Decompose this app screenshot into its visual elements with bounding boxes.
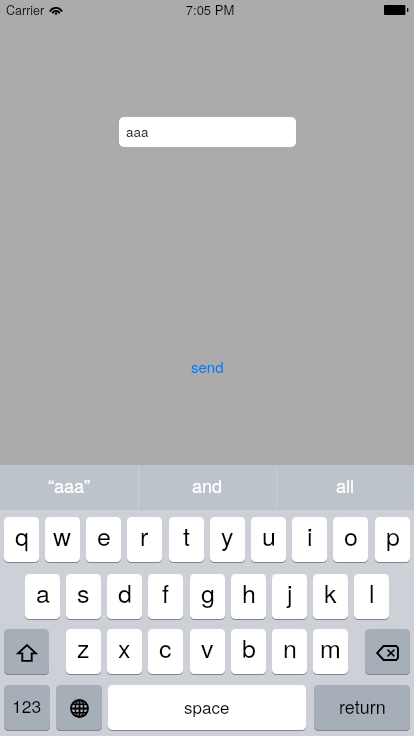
button[interactable]: and bbox=[138, 465, 276, 510]
staticText: z bbox=[77, 629, 90, 665]
staticText: d bbox=[118, 574, 132, 610]
button[interactable]: w bbox=[45, 517, 80, 562]
button[interactable]: q bbox=[4, 517, 39, 562]
staticText: s bbox=[77, 574, 90, 610]
staticText: m bbox=[320, 629, 341, 665]
staticText: g bbox=[201, 574, 215, 610]
button[interactable]: Shift bbox=[4, 629, 49, 674]
staticText: t bbox=[183, 517, 190, 553]
button[interactable]: return bbox=[314, 685, 410, 730]
staticText: 123 bbox=[12, 693, 42, 718]
button[interactable]: c bbox=[148, 629, 183, 674]
staticText: a bbox=[36, 574, 50, 610]
button[interactable]: f bbox=[148, 574, 183, 619]
button[interactable]: h bbox=[231, 574, 266, 619]
staticText: f bbox=[162, 574, 169, 610]
staticText: 7:05 PM bbox=[3, 0, 414, 19]
button[interactable]: r bbox=[127, 517, 162, 562]
staticText: r bbox=[140, 517, 149, 553]
staticText: all bbox=[336, 472, 354, 498]
staticText: h bbox=[242, 574, 256, 610]
button[interactable]: z bbox=[66, 629, 101, 674]
button[interactable]: “aaa” bbox=[0, 465, 138, 510]
staticText: c bbox=[159, 629, 172, 665]
button[interactable]: v bbox=[190, 629, 225, 674]
button[interactable]: y bbox=[210, 517, 245, 562]
staticText: u bbox=[262, 517, 276, 553]
button[interactable]: all bbox=[276, 465, 414, 510]
button[interactable]: k bbox=[313, 574, 348, 619]
staticText: k bbox=[324, 574, 337, 610]
button[interactable]: i bbox=[292, 517, 327, 562]
staticText: Carrier bbox=[6, 1, 45, 19]
staticText: y bbox=[221, 517, 234, 553]
staticText: l bbox=[369, 574, 375, 610]
staticText: o bbox=[344, 517, 358, 553]
button[interactable]: a bbox=[25, 574, 60, 619]
button[interactable]: m bbox=[313, 629, 348, 674]
button[interactable]: 123 bbox=[4, 685, 50, 730]
button[interactable]: space bbox=[108, 685, 306, 730]
button[interactable]: n bbox=[272, 629, 307, 674]
button[interactable]: g bbox=[190, 574, 225, 619]
button[interactable]: Backspace bbox=[365, 629, 410, 674]
button[interactable]: b bbox=[231, 629, 266, 674]
button[interactable]: x bbox=[107, 629, 142, 674]
button[interactable]: j bbox=[272, 574, 307, 619]
button[interactable]: u bbox=[251, 517, 286, 562]
staticText: aaa bbox=[126, 122, 149, 141]
staticText: and bbox=[192, 472, 223, 498]
staticText: j bbox=[287, 574, 293, 610]
staticText: e bbox=[97, 517, 111, 553]
staticText: i bbox=[307, 517, 313, 553]
button[interactable]: p bbox=[375, 517, 410, 562]
staticText: p bbox=[386, 517, 400, 553]
staticText: x bbox=[118, 629, 131, 665]
staticText: “aaa” bbox=[48, 472, 91, 498]
staticText: n bbox=[283, 629, 297, 665]
button[interactable]: Change keyboard bbox=[56, 685, 102, 730]
button[interactable]: t bbox=[169, 517, 204, 562]
button[interactable]: d bbox=[107, 574, 142, 619]
staticText: send bbox=[191, 356, 224, 377]
staticText: q bbox=[15, 517, 29, 553]
button[interactable]: aaa bbox=[119, 117, 296, 147]
button[interactable]: e bbox=[86, 517, 121, 562]
button[interactable]: send bbox=[177, 354, 237, 378]
staticText: b bbox=[242, 629, 256, 665]
staticText: v bbox=[201, 629, 214, 665]
button[interactable]: l bbox=[354, 574, 389, 619]
staticText: space bbox=[184, 694, 230, 718]
button[interactable]: o bbox=[333, 517, 368, 562]
button[interactable]: s bbox=[66, 574, 101, 619]
staticText: return bbox=[339, 693, 386, 719]
staticText: w bbox=[53, 517, 72, 553]
